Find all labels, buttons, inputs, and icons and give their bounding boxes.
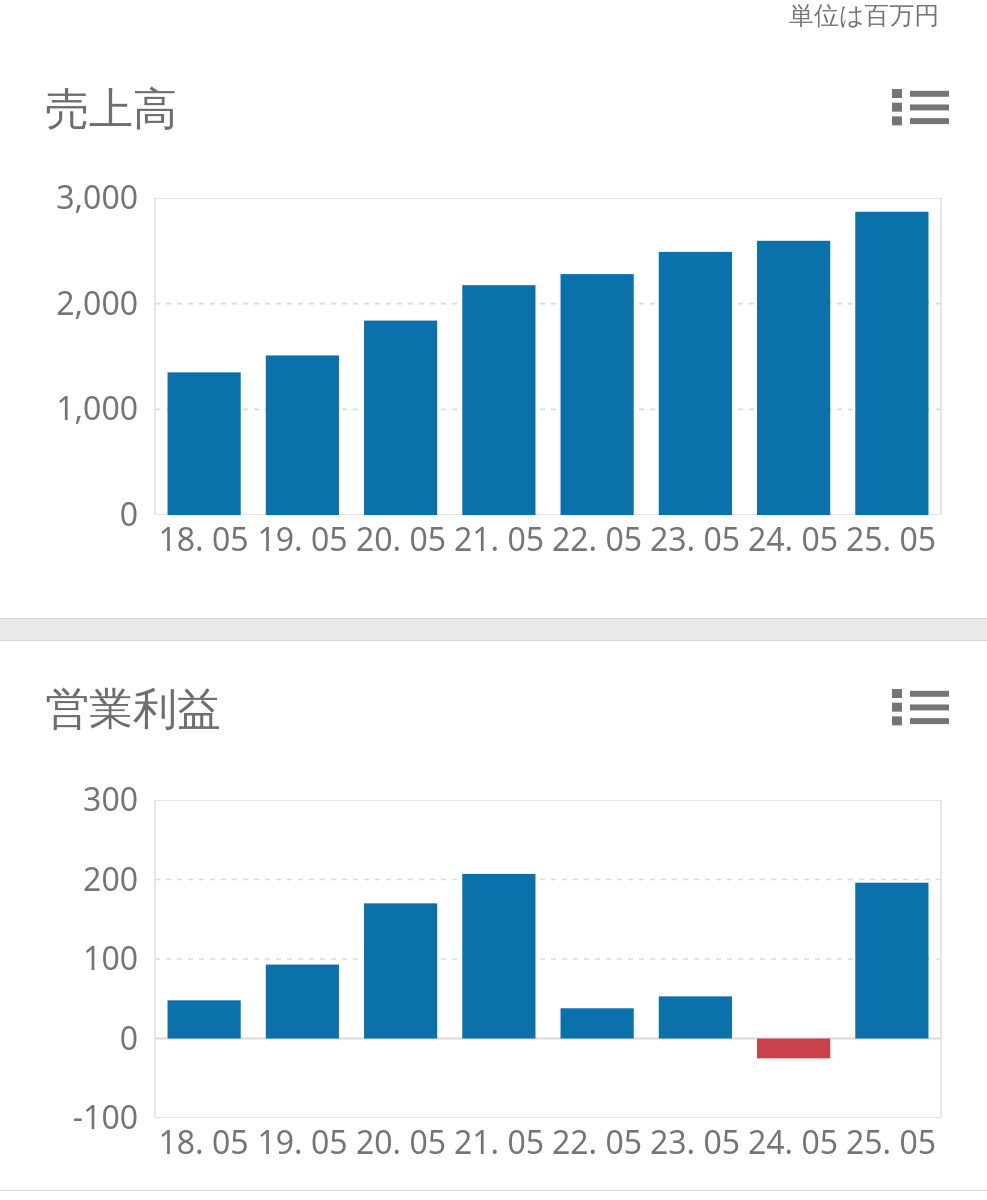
staticText: 25. 05 [842, 517, 940, 561]
staticText: 100 [2, 936, 138, 980]
staticText: 売上高 [45, 82, 177, 137]
staticText: 200 [2, 857, 138, 901]
staticText: 23. 05 [646, 517, 744, 561]
staticText: 19. 05 [253, 1120, 352, 1164]
staticText: 25. 05 [842, 1120, 940, 1164]
staticText: 24. 05 [744, 1120, 842, 1164]
staticText: 22. 05 [548, 1120, 646, 1164]
staticText: 20. 05 [352, 517, 450, 561]
staticText: 18. 05 [154, 517, 253, 561]
staticText: 21. 05 [450, 517, 548, 561]
staticText: 営業利益 [45, 682, 221, 737]
staticText: 0 [2, 1016, 138, 1060]
staticText: 19. 05 [253, 517, 352, 561]
button[interactable]: List view [883, 80, 957, 138]
staticText: 21. 05 [450, 1120, 548, 1164]
staticText: 20. 05 [352, 1120, 450, 1164]
staticText: 22. 05 [548, 517, 646, 561]
staticText: -100 [2, 1095, 138, 1139]
staticText: 24. 05 [744, 517, 842, 561]
button[interactable]: List view [883, 680, 957, 738]
staticText: 23. 05 [646, 1120, 744, 1164]
staticText: 3,000 [2, 175, 138, 219]
staticText: 単位は百万円 [789, 0, 940, 31]
button[interactable]: 売上高 [0, 78, 987, 140]
button[interactable]: 営業利益 [0, 678, 987, 740]
staticText: 1,000 [2, 386, 138, 430]
staticText: 0 [2, 492, 138, 536]
staticText: 18. 05 [154, 1120, 253, 1164]
staticText: 2,000 [2, 281, 138, 325]
staticText: 300 [2, 777, 138, 821]
